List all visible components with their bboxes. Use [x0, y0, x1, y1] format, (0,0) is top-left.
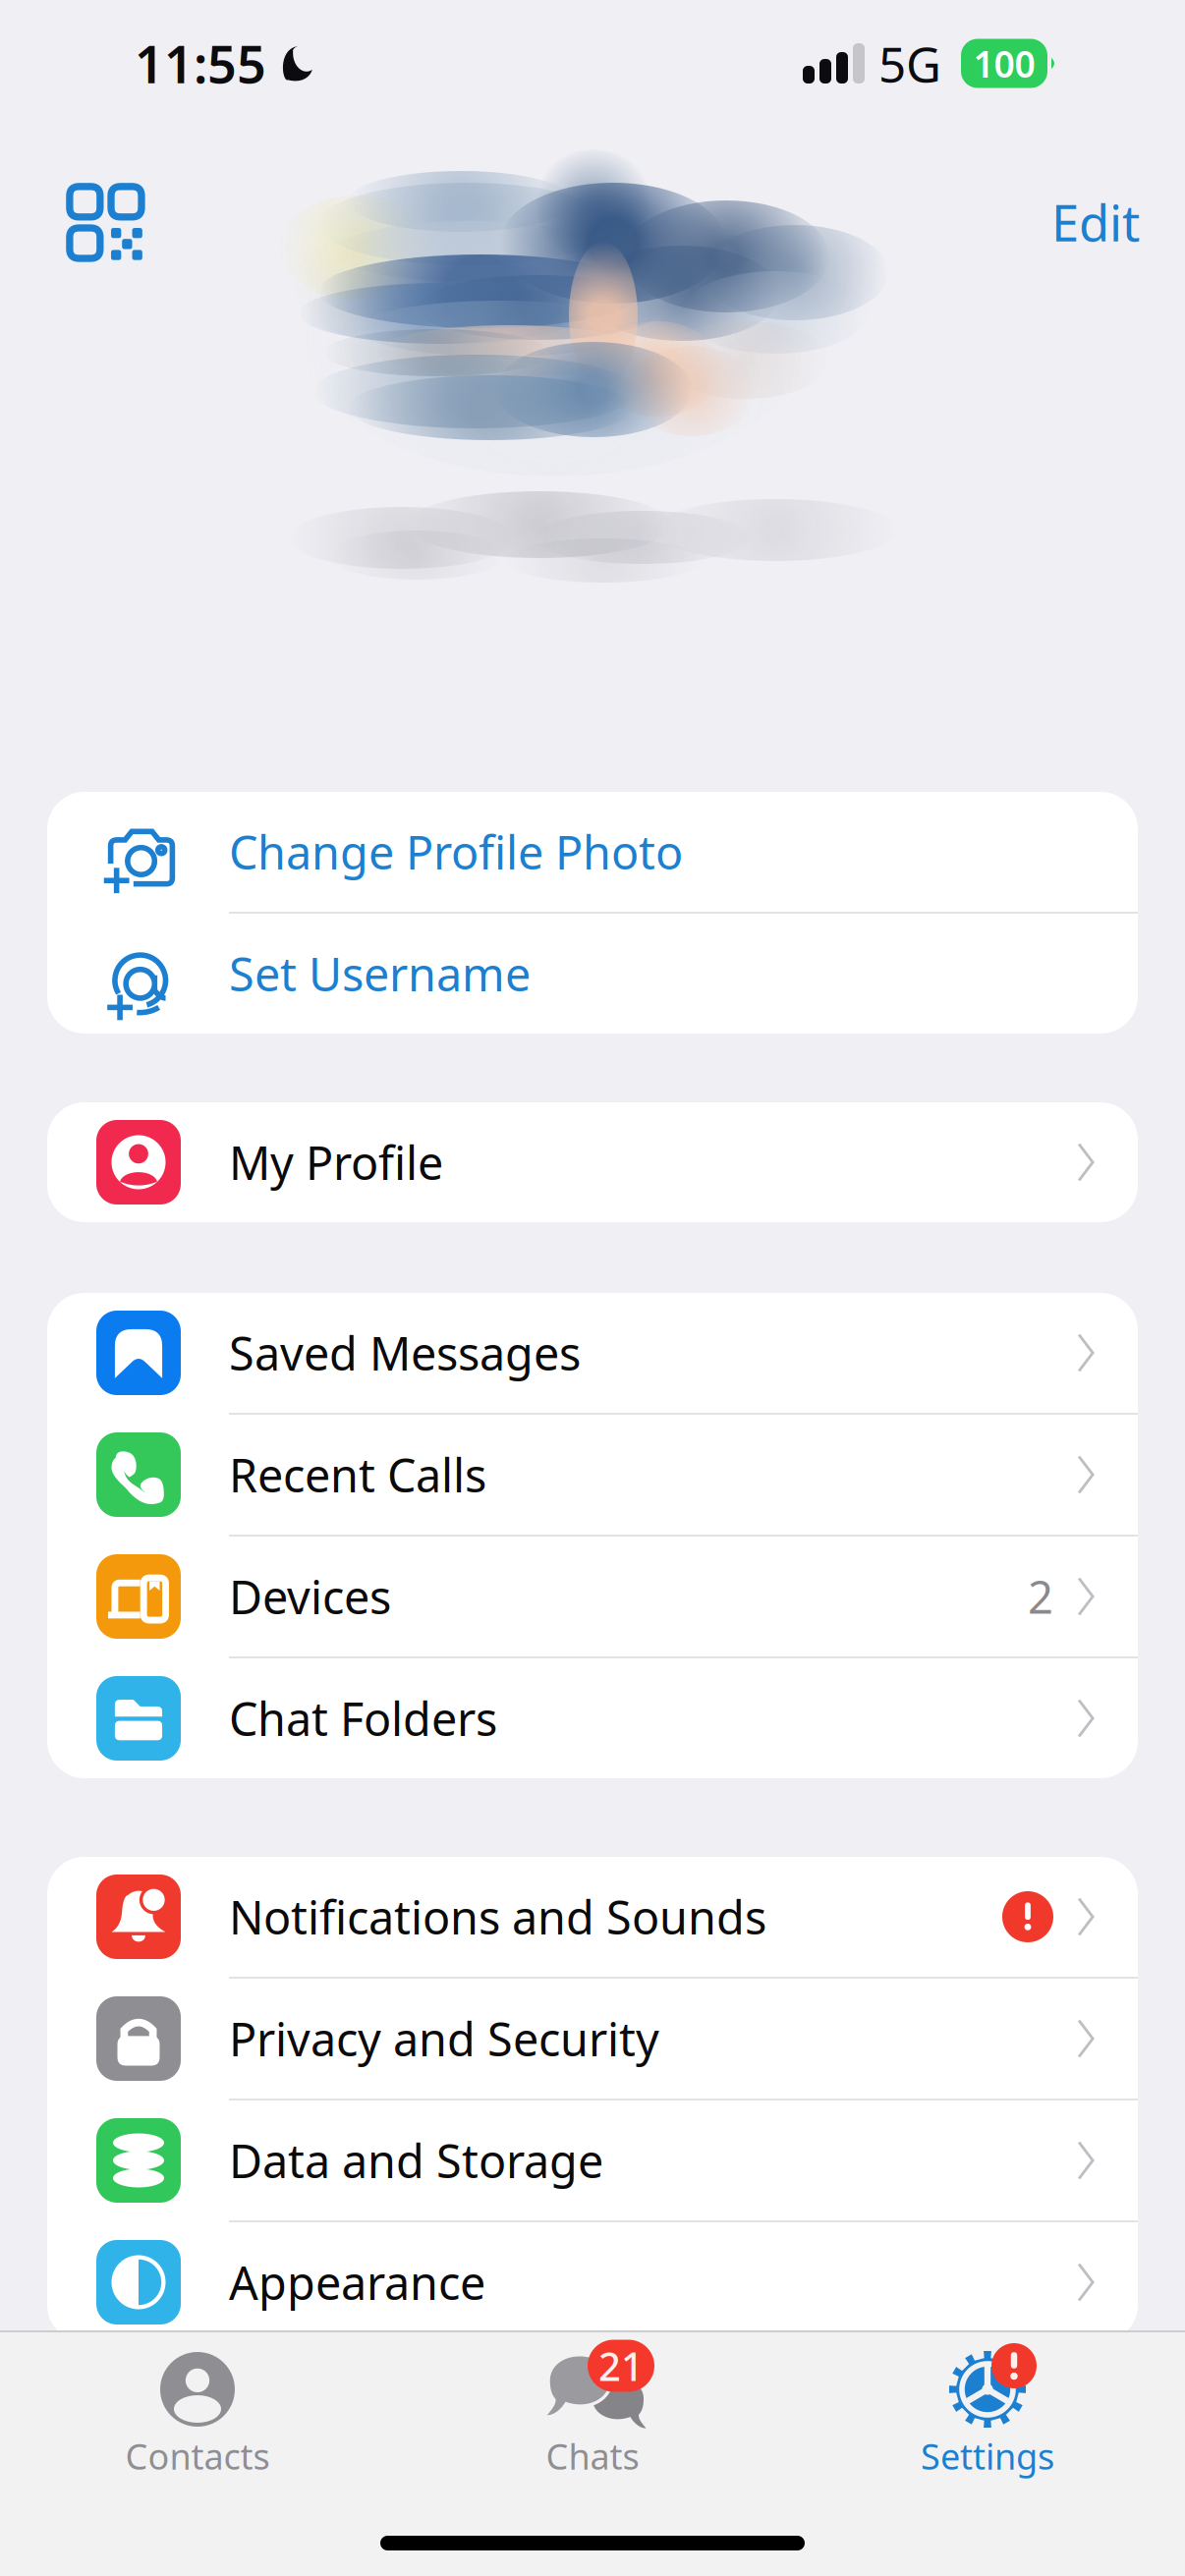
staticText: Recent Calls [229, 1444, 486, 1505]
staticText: 21 [598, 2340, 644, 2392]
button[interactable]: Saved Messages [47, 1293, 1138, 1413]
staticText: 11:55 [135, 29, 266, 97]
staticText: Saved Messages [229, 1322, 581, 1383]
staticText: Contacts [125, 2433, 270, 2480]
staticText: Set Username [229, 943, 531, 1004]
staticText: Notifications and Sounds [229, 1886, 766, 1947]
button[interactable]: Privacy and Security [47, 1979, 1138, 2099]
button[interactable]: Change Profile Photo [47, 792, 1138, 912]
staticText: Edit [1051, 189, 1140, 255]
button[interactable]: Notifications and Sounds [47, 1857, 1138, 1977]
button[interactable]: My Profile [47, 1102, 1138, 1222]
button[interactable]: 21 [395, 2350, 790, 2480]
staticText: Appearance [229, 2252, 485, 2313]
button[interactable]: Contacts [0, 2350, 395, 2480]
staticText: 2 [1028, 1567, 1053, 1626]
staticText: Privacy and Security [229, 2008, 659, 2069]
staticText: Settings [921, 2433, 1054, 2480]
button[interactable]: Appearance [47, 2222, 1138, 2342]
staticText: Chats [546, 2433, 639, 2480]
button[interactable]: Chat Folders [47, 1658, 1138, 1778]
staticText: 100 [973, 39, 1035, 88]
button[interactable]: Set Username [47, 914, 1138, 1034]
staticText: Devices [229, 1566, 391, 1627]
button[interactable]: Data and Storage [47, 2100, 1138, 2220]
button[interactable]: Edit [1051, 189, 1140, 255]
button[interactable]: Devices [47, 1537, 1138, 1656]
staticText: 5G [878, 31, 941, 96]
staticText: My Profile [229, 1132, 443, 1193]
staticText: Data and Storage [229, 2130, 603, 2191]
staticText: Change Profile Photo [229, 821, 683, 882]
button[interactable]: QR code [63, 180, 147, 264]
staticText: Chat Folders [229, 1688, 497, 1749]
button[interactable]: Recent Calls [47, 1415, 1138, 1535]
button[interactable]: Settings [790, 2350, 1185, 2480]
